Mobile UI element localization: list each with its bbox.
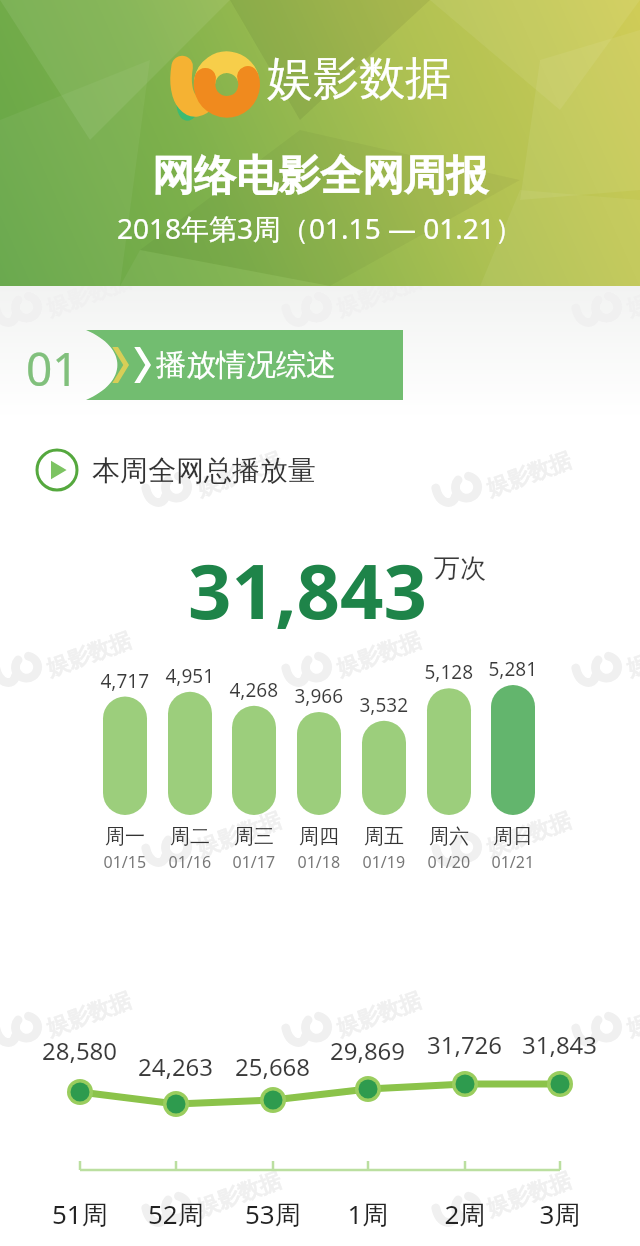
- button[interactable]: 网络电影全网周报: [0, 0, 640, 1246]
